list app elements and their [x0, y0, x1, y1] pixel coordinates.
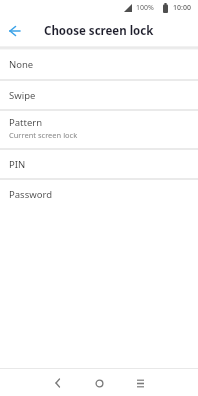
staticText: 10:00 [173, 3, 191, 13]
staticText: Choose screen lock [44, 23, 154, 39]
staticText: Password [9, 188, 52, 201]
button[interactable] [128, 371, 152, 395]
button[interactable]: PIN [0, 150, 198, 178]
button[interactable] [87, 371, 111, 395]
button[interactable] [46, 371, 70, 395]
staticText: 100% [136, 3, 154, 13]
button[interactable]: Password [0, 180, 198, 208]
staticText: Pattern [9, 116, 43, 129]
staticText: None [9, 58, 34, 71]
button[interactable]: Pattern [0, 111, 198, 148]
button[interactable] [8, 24, 22, 38]
staticText: Current screen lock [9, 130, 78, 140]
button[interactable]: Swipe [0, 81, 198, 109]
button[interactable]: None [0, 50, 198, 79]
staticText: PIN [9, 158, 26, 171]
staticText: Swipe [9, 89, 36, 102]
